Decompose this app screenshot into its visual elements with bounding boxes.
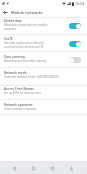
button[interactable] [69,23,81,29]
button[interactable]: Mobile data [0,17,87,35]
button[interactable]: Recent apps [46,162,58,174]
button[interactable]: Network mode [0,68,87,86]
staticText: Data roaming [4,55,25,59]
staticText: communication services on LTE [4,45,44,49]
button[interactable]: VoLTE [0,35,87,52]
button[interactable]: Home [27,162,39,174]
button[interactable]: Hide keyboard [65,162,77,174]
staticText: Use high-quality voice calls and [4,41,44,45]
staticText: networks [4,27,16,31]
staticText: Mobile data [4,19,22,23]
staticText: Network operators [4,103,33,107]
staticText: Access Point Names [4,87,35,91]
staticText: VoLTE [4,37,13,41]
staticText: Mobile networks [11,10,43,15]
button[interactable]: Network operators [0,99,87,115]
button[interactable] [69,57,81,63]
staticText: 10:54 [75,1,85,6]
button[interactable]: Access Point Names [0,86,87,100]
staticText: Allow data connection over mobile [4,23,48,27]
button[interactable] [69,41,81,47]
staticText: Preferred network mode: GSM/WCDMA/LTE [4,75,60,79]
button[interactable]: Navigate up [0,7,11,17]
staticText: Network mode [4,71,27,75]
button[interactable]: Back [8,162,20,174]
button[interactable]: Data roaming [0,52,87,68]
staticText: Set up APNs for data services [4,91,41,95]
staticText: Select a network operator [4,107,37,111]
staticText: Allow data services while roaming [4,59,47,63]
